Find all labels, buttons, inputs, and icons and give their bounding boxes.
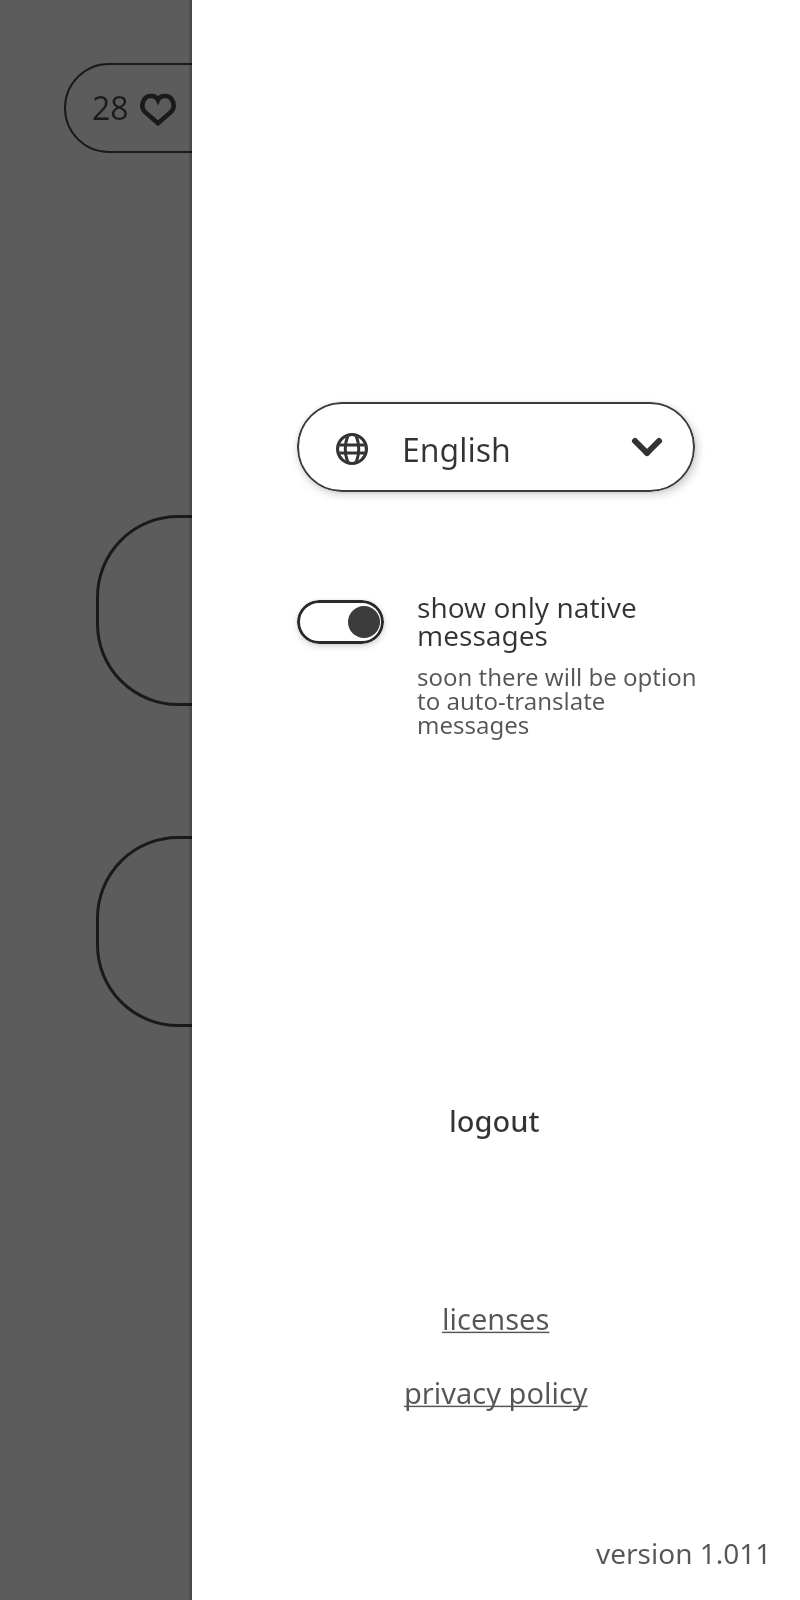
- button[interactable]: Close settings: [0, 0, 192, 1600]
- staticText: show only native messages: [417, 588, 637, 654]
- staticText: logout: [449, 1101, 540, 1140]
- staticText: version 1.011: [596, 1534, 772, 1572]
- staticText: 28: [92, 86, 129, 130]
- button[interactable]: logout: [194, 1088, 794, 1152]
- button[interactable]: privacy policy: [196, 1362, 796, 1422]
- staticText: licenses: [442, 1299, 550, 1338]
- staticText: soon there will be option to auto-transl…: [417, 660, 697, 741]
- button[interactable]: Toggle show only native messages: [297, 600, 384, 644]
- button[interactable]: English: [297, 402, 695, 492]
- staticText: English: [402, 428, 511, 472]
- staticText: privacy policy: [404, 1373, 588, 1412]
- button[interactable]: licenses: [196, 1288, 796, 1348]
